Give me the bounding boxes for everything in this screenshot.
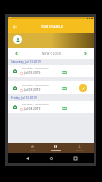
staticText: PROFILE [76,149,84,152]
button[interactable]: Add entry [79,84,87,92]
button[interactable]: Back [23,154,32,163]
button[interactable]: Previous [13,50,20,57]
button[interactable]: Recents [71,154,80,163]
staticText: NEW CLOCK [42,52,62,56]
staticText: COLLEGE - ADMISSION [22,103,49,106]
button[interactable]: Next [82,50,89,57]
button[interactable]: COLLEGE - ADMISSION [8,65,94,77]
button[interactable]: COLLEGE - ADMISSION [8,81,94,94]
staticText: TIMETABLE [51,149,61,152]
button[interactable]: Home [47,154,56,163]
staticText: Friday, Jul 12 2019 [11,96,37,100]
staticText: Sent [62,107,67,110]
button[interactable]: PROFILE [71,143,88,153]
staticText: Sent [62,87,67,90]
staticText: COLLEGE - ADMISSION [22,67,49,70]
button[interactable]: HOME [24,143,41,153]
staticText: Jul 09 2019 [24,88,41,92]
staticText: COLLEGE - ADMISSION [22,84,49,87]
staticText: Jul 09 2019 [24,71,41,75]
staticText: HOME [30,149,36,152]
staticText: Jul 08 2019 [24,107,41,111]
button[interactable]: Back [10,22,19,31]
staticText: Saturday, Jul 13 2019 [11,60,41,64]
staticText: TIMETABLE [41,24,64,29]
button[interactable]: TIMETABLE [47,143,64,153]
button[interactable]: COLLEGE - ADMISSION [8,101,94,113]
staticText: Sent [62,71,67,74]
